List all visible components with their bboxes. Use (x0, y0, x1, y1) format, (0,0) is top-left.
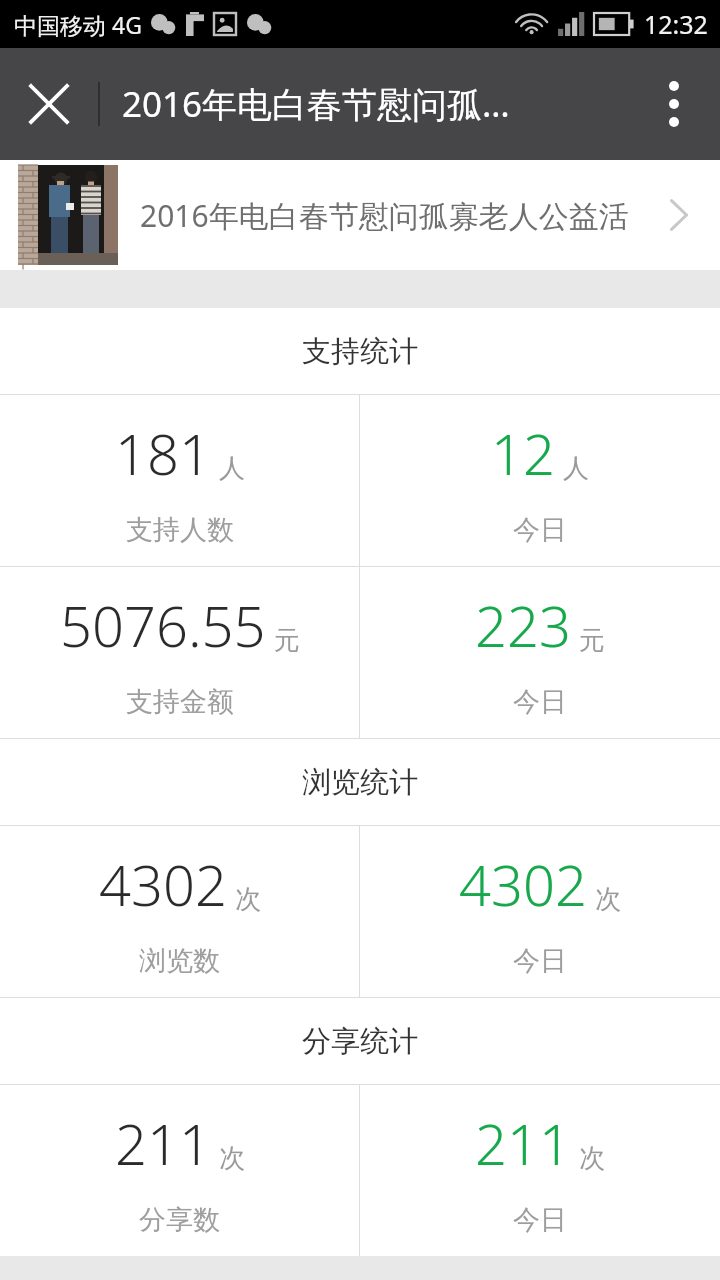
staticText: 支持统计 (302, 333, 418, 370)
button[interactable]: 211 (360, 1085, 720, 1256)
staticText: 元 (274, 624, 300, 657)
staticText: 181 (115, 415, 211, 491)
staticText: 12 (491, 415, 555, 491)
staticText: 5076.55 (60, 587, 266, 663)
staticText: 2016年电白春节慰问孤… (122, 80, 510, 128)
staticText: 次 (235, 883, 261, 916)
staticText: 次 (219, 1142, 245, 1175)
staticText: 支持人数 (126, 513, 234, 547)
staticText: 元 (579, 624, 605, 657)
button[interactable]: 211 (0, 1085, 359, 1256)
button[interactable]: 4302 (360, 826, 720, 997)
staticText: 次 (595, 883, 621, 916)
button[interactable]: More options (628, 48, 720, 160)
staticText: 分享统计 (302, 1023, 418, 1060)
other: Open detail (656, 192, 702, 238)
button[interactable]: 5076.55 (0, 567, 359, 738)
button[interactable]: 181 (0, 395, 359, 566)
staticText: 4302 (459, 846, 587, 922)
button[interactable]: 12 (360, 395, 720, 566)
staticText: 211 (115, 1105, 211, 1181)
staticText: 浏览统计 (302, 764, 418, 801)
staticText: 次 (579, 1142, 605, 1175)
button[interactable]: Close (0, 48, 98, 160)
button[interactable]: 4302 (0, 826, 359, 997)
staticText: 人 (563, 452, 589, 485)
staticText: 2016年电白春节慰问孤寡老人公益活 (140, 195, 656, 236)
staticText: 211 (475, 1105, 571, 1181)
staticText: 浏览数 (139, 944, 220, 978)
staticText: 支持金额 (126, 685, 234, 719)
button[interactable]: 223 (360, 567, 720, 738)
staticText: 12:32 (644, 7, 708, 41)
button[interactable]: 2016年电白春节慰问孤寡老人公益活 (0, 160, 720, 270)
staticText: 人 (219, 452, 245, 485)
staticText: 中国移动 4G (14, 9, 142, 40)
staticText: 今日 (513, 944, 567, 978)
staticText: 今日 (513, 513, 567, 547)
staticText: 分享数 (139, 1203, 220, 1237)
staticText: 今日 (513, 1203, 567, 1237)
staticText: 今日 (513, 685, 567, 719)
staticText: 4302 (99, 846, 227, 922)
staticText: 223 (475, 587, 571, 663)
